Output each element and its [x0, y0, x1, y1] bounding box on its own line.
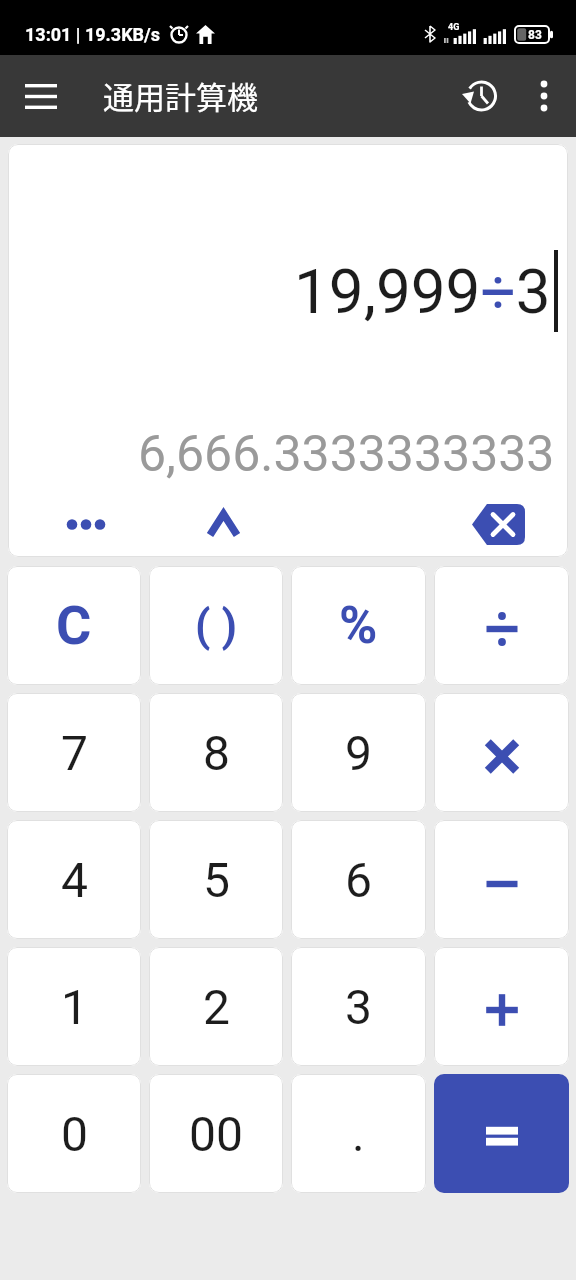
staticText: 4G: [448, 22, 460, 33]
button[interactable]: 2: [149, 947, 283, 1066]
button[interactable]: 00: [149, 1074, 283, 1193]
button[interactable]: [66, 504, 118, 545]
button[interactable]: 8: [149, 693, 283, 812]
staticText: 3: [345, 979, 372, 1035]
button[interactable]: 6: [291, 820, 426, 939]
staticText: ( ): [195, 600, 237, 652]
staticText: 通用計算機: [103, 73, 258, 118]
staticText: 0: [61, 1106, 88, 1162]
button[interactable]: 1: [7, 947, 141, 1066]
staticText: %: [339, 595, 378, 656]
button[interactable]: [434, 820, 569, 939]
button[interactable]: [472, 504, 525, 545]
staticText: 9: [345, 725, 372, 781]
button[interactable]: C: [7, 566, 141, 685]
button[interactable]: [434, 1074, 569, 1193]
staticText: 7: [61, 725, 88, 781]
button[interactable]: 3: [291, 947, 426, 1066]
staticText: C: [56, 594, 92, 657]
button[interactable]: [434, 693, 569, 812]
button[interactable]: 5: [149, 820, 283, 939]
staticText: 6: [345, 852, 372, 908]
button[interactable]: [209, 504, 249, 545]
staticText: 2: [203, 979, 230, 1035]
button[interactable]: .: [291, 1074, 426, 1193]
staticText: 19,999÷3: [294, 255, 551, 328]
button[interactable]: 7: [7, 693, 141, 812]
button[interactable]: 4: [7, 820, 141, 939]
staticText: .: [352, 1106, 365, 1162]
staticText: 1: [61, 979, 88, 1035]
button[interactable]: [17, 72, 65, 120]
button[interactable]: 9: [291, 693, 426, 812]
staticText: 83: [528, 28, 542, 42]
button[interactable]: [434, 947, 569, 1066]
button[interactable]: 0: [7, 1074, 141, 1193]
button[interactable]: ( ): [149, 566, 283, 685]
staticText: 8: [203, 725, 230, 781]
button[interactable]: %: [291, 566, 426, 685]
button[interactable]: [457, 72, 505, 120]
staticText: 00: [189, 1106, 243, 1162]
button[interactable]: [522, 74, 566, 118]
staticText: 5: [203, 852, 230, 908]
staticText: 13:01 | 19.3KB/s: [25, 24, 161, 45]
button[interactable]: [434, 566, 569, 685]
staticText: 4: [61, 852, 88, 908]
staticText: 6,666.3333333333: [138, 425, 555, 484]
